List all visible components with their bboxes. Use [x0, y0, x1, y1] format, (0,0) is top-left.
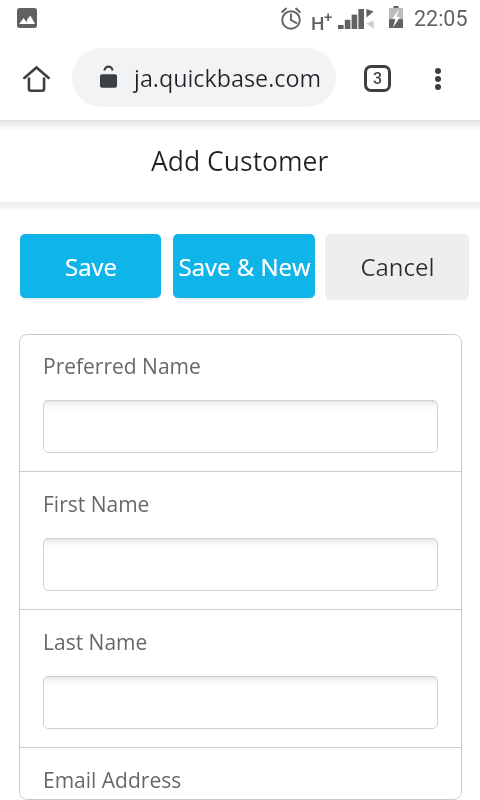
- button[interactable]: More options: [414, 55, 461, 102]
- staticText: Preferred Name: [43, 352, 201, 381]
- button[interactable]: [43, 538, 438, 591]
- button[interactable]: [43, 676, 438, 729]
- button[interactable]: Save & New: [173, 234, 315, 298]
- button[interactable]: Tabs: [354, 55, 401, 102]
- staticText: H: [311, 12, 325, 34]
- staticText: Last Name: [43, 628, 148, 657]
- button[interactable]: Home: [13, 55, 60, 102]
- staticText: 22:05: [414, 6, 468, 31]
- staticText: Save: [65, 250, 117, 283]
- staticText: ja.quickbase.com: [134, 62, 322, 94]
- button[interactable]: Cancel: [325, 234, 469, 298]
- staticText: Cancel: [360, 250, 435, 283]
- staticText: +: [324, 8, 333, 26]
- staticText: First Name: [43, 490, 150, 519]
- button[interactable]: Save: [20, 234, 161, 298]
- button[interactable]: ja.quickbase.com: [72, 48, 336, 107]
- button[interactable]: [43, 400, 438, 453]
- staticText: Save & New: [178, 250, 311, 283]
- staticText: 3: [373, 69, 383, 88]
- staticText: Email Address: [43, 766, 182, 795]
- staticText: Add Customer: [151, 143, 329, 179]
